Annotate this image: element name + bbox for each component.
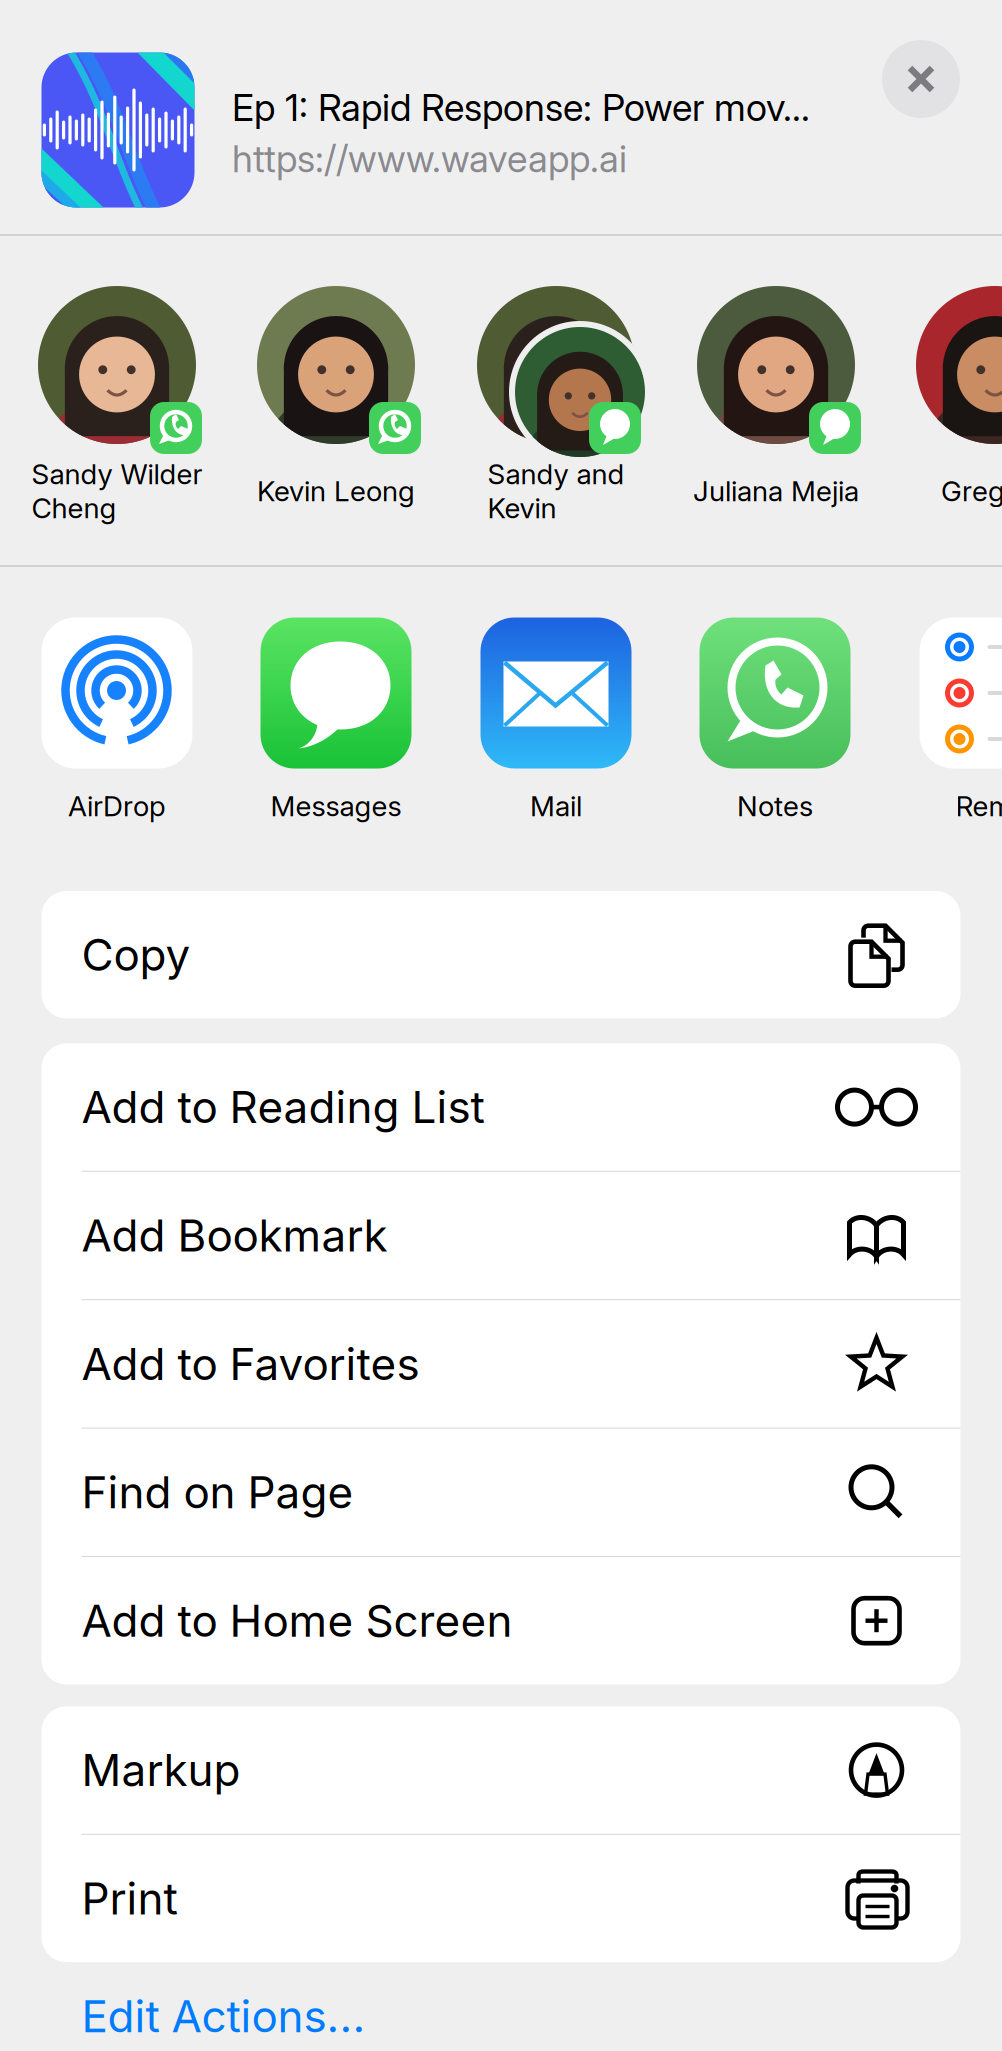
staticText: Add to Favorites [81,1337,419,1390]
staticText: Mail [530,789,582,823]
staticText: Add Bookmark [81,1209,387,1262]
staticText: Markup [81,1743,240,1797]
staticText: Ep 1: Rapid Response: Power mov... [232,85,810,130]
button[interactable]: Mail [451,590,661,840]
staticText: Add to Reading List [81,1080,484,1134]
button[interactable]: Add Bookmark [41,1172,960,1299]
staticText: Notes [737,789,813,823]
button[interactable] [890,236,1002,536]
button[interactable]: Close [882,40,960,118]
button[interactable]: Add to Favorites [41,1300,960,1428]
staticText: Add to Home Screen [81,1594,512,1647]
button[interactable]: Print [41,1835,960,1962]
staticText: Greg Ap [941,474,1002,508]
button[interactable]: Notes [670,590,880,840]
staticText: Sandy and Kevin [487,457,624,525]
button[interactable]: Find on Page [41,1429,960,1556]
button[interactable]: Edit Actions... [41,1962,960,2051]
staticText: Juliana Mejia [693,474,859,508]
button[interactable]: Messages [231,590,441,840]
button[interactable]: Add to Home Screen [41,1557,960,1684]
button[interactable]: AirDrop [12,590,222,840]
button[interactable] [671,236,881,536]
staticText: https://www.waveapp.ai [232,136,627,181]
staticText: Edit Actions... [81,1990,365,2043]
staticText: AirDrop [68,789,166,823]
button[interactable]: Add to Reading List [41,1043,960,1171]
staticText: Sandy Wilder Cheng [31,457,202,525]
staticText: Copy [81,928,190,981]
staticText: Remin [955,789,1002,823]
button[interactable] [451,236,661,536]
staticText: Messages [270,789,401,823]
staticText: Find on Page [81,1466,353,1519]
staticText: Print [81,1872,177,1925]
button[interactable] [12,236,222,536]
staticText: Kevin Leong [257,474,415,508]
button[interactable]: Copy [41,891,960,1018]
button[interactable]: Remin [890,590,1002,840]
button[interactable]: Markup [41,1706,960,1834]
button[interactable] [231,236,441,536]
